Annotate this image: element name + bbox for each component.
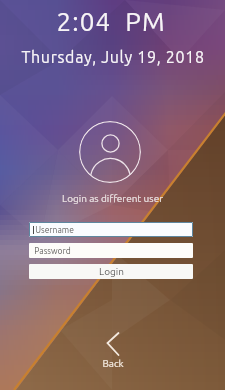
button[interactable]: Back (98, 328, 128, 369)
staticText: Username (35, 225, 74, 235)
staticText: Login as different user (62, 193, 163, 204)
button[interactable]: Current user account (79, 121, 141, 183)
staticText: Thursday, July 19, 2018 (21, 48, 205, 66)
button[interactable]: Username (29, 222, 193, 237)
staticText: Back (102, 358, 124, 369)
staticText: 2:04 PM (56, 7, 166, 36)
staticText: Password (34, 246, 71, 256)
staticText: Login (99, 266, 124, 277)
button[interactable]: Password (29, 243, 193, 258)
button[interactable]: Login (29, 264, 193, 279)
button[interactable]: Login as different user (54, 191, 171, 206)
